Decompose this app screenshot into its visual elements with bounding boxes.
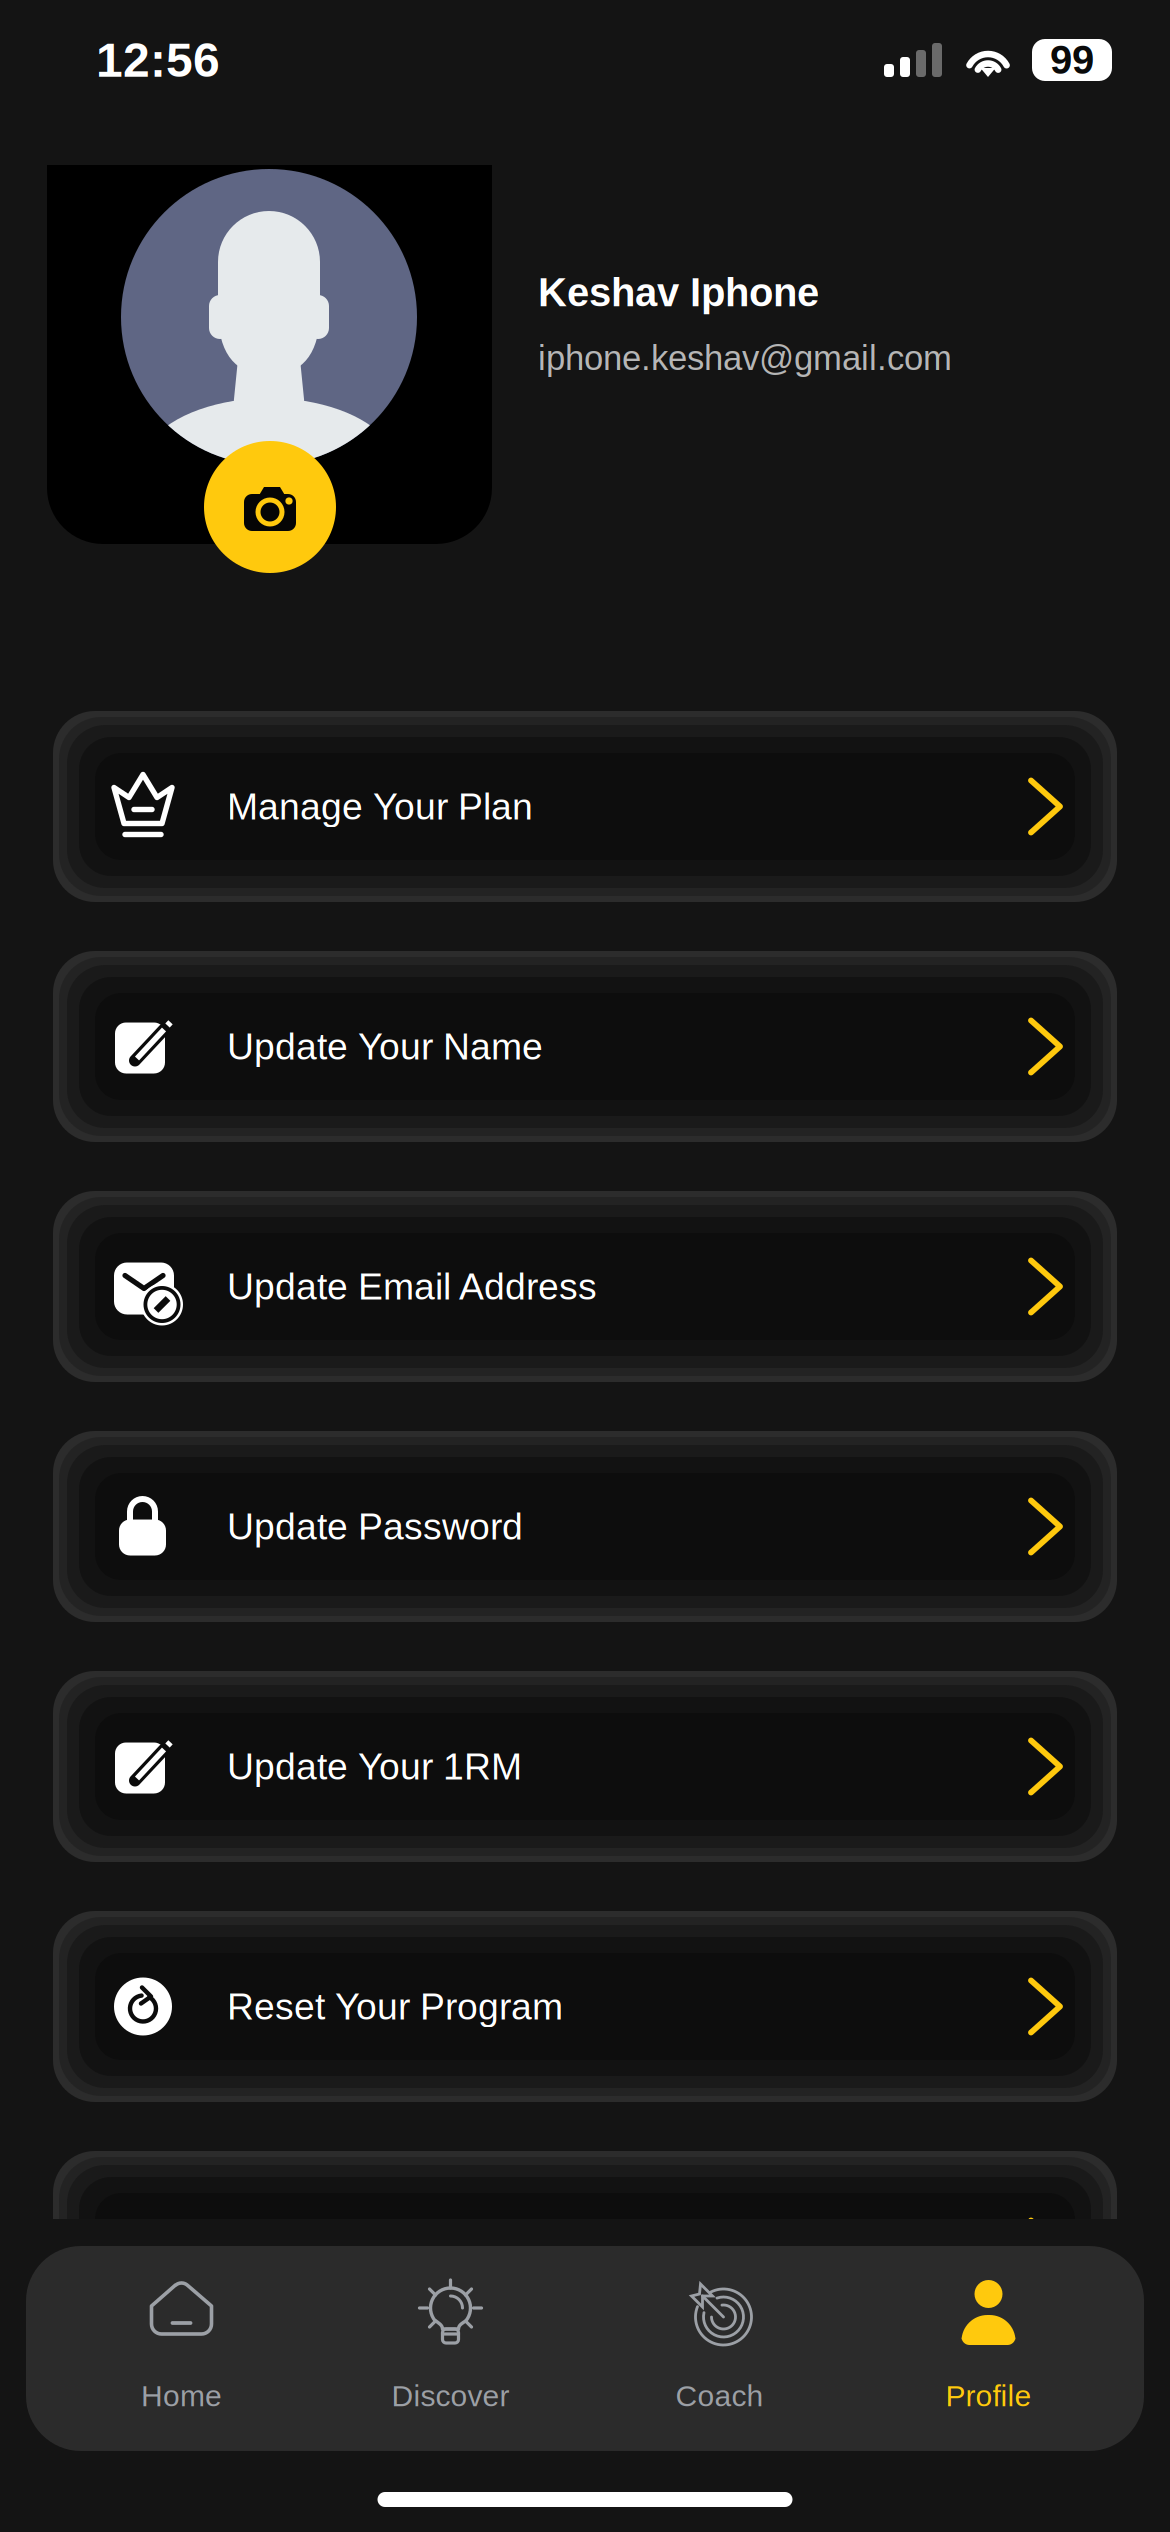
button[interactable]: Update Your Name [53,951,1117,1142]
button[interactable]: Home [47,2246,316,2451]
staticText: Keshav Iphone [538,270,819,315]
staticText: Update Your 1RM [227,1746,522,1787]
button[interactable]: Update Email Address [53,1191,1117,1382]
staticText: Coach [675,2379,763,2412]
button[interactable]: Profile [854,2246,1123,2451]
button[interactable]: Manage Your Plan [53,711,1117,902]
staticText: Update Email Address [227,1266,597,1307]
staticText: Update Your Name [227,1026,543,1067]
staticText: Reset Your Program [227,1986,563,2027]
staticText: iphone.keshav@gmail.com [538,339,952,377]
staticText: Home [141,2379,222,2412]
staticText: Manage Your Plan [227,786,533,827]
button[interactable]: Delete Account [53,2151,1117,2342]
staticText: 12:56 [96,33,220,87]
staticText: Update Password [227,1506,523,1547]
staticText: Delete Account [227,2226,479,2267]
button[interactable]: Update Password [53,1431,1117,1622]
button[interactable]: Reset Your Program [53,1911,1117,2102]
button[interactable]: Discover [316,2246,585,2451]
staticText: Discover [391,2379,509,2412]
button[interactable]: Update Your 1RM [53,1671,1117,1862]
staticText: 99 [1050,38,1094,82]
staticText: Profile [945,2379,1031,2412]
button[interactable]: Coach [585,2246,854,2451]
